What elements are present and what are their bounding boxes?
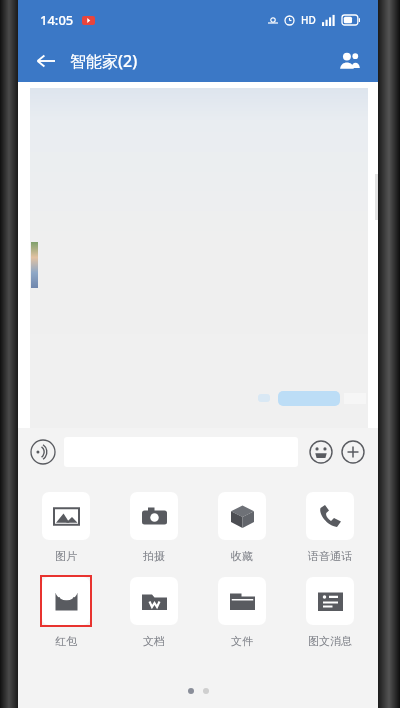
staticText: 文档 [143,634,165,648]
button[interactable]: 语音通话 [294,490,366,563]
staticText: HD [301,13,316,27]
button[interactable]: 收藏 [206,490,278,563]
staticText: 图文消息 [308,634,352,648]
staticText: 拍摄 [143,549,165,563]
button[interactable]: 红包 [30,575,102,648]
button[interactable]: 图片 [30,490,102,563]
button[interactable]: 文档 [118,575,190,648]
staticText: 智能家(2) [70,50,138,72]
button[interactable]: 拍摄 [118,490,190,563]
button[interactable]: 文件 [206,575,278,648]
staticText: 语音通话 [308,549,352,563]
button[interactable]: Group members [330,41,370,81]
staticText: 文件 [231,634,253,648]
button[interactable]: More options [338,437,368,467]
staticText: 14:05 [40,11,74,29]
staticText: 收藏 [231,549,253,563]
staticText: 红包 [55,634,77,648]
button[interactable]: 图文消息 [294,575,366,648]
button[interactable]: Emoji [306,437,336,467]
button[interactable]: Voice message [28,437,58,467]
button[interactable]: Back [26,41,66,81]
staticText: 图片 [55,549,77,563]
